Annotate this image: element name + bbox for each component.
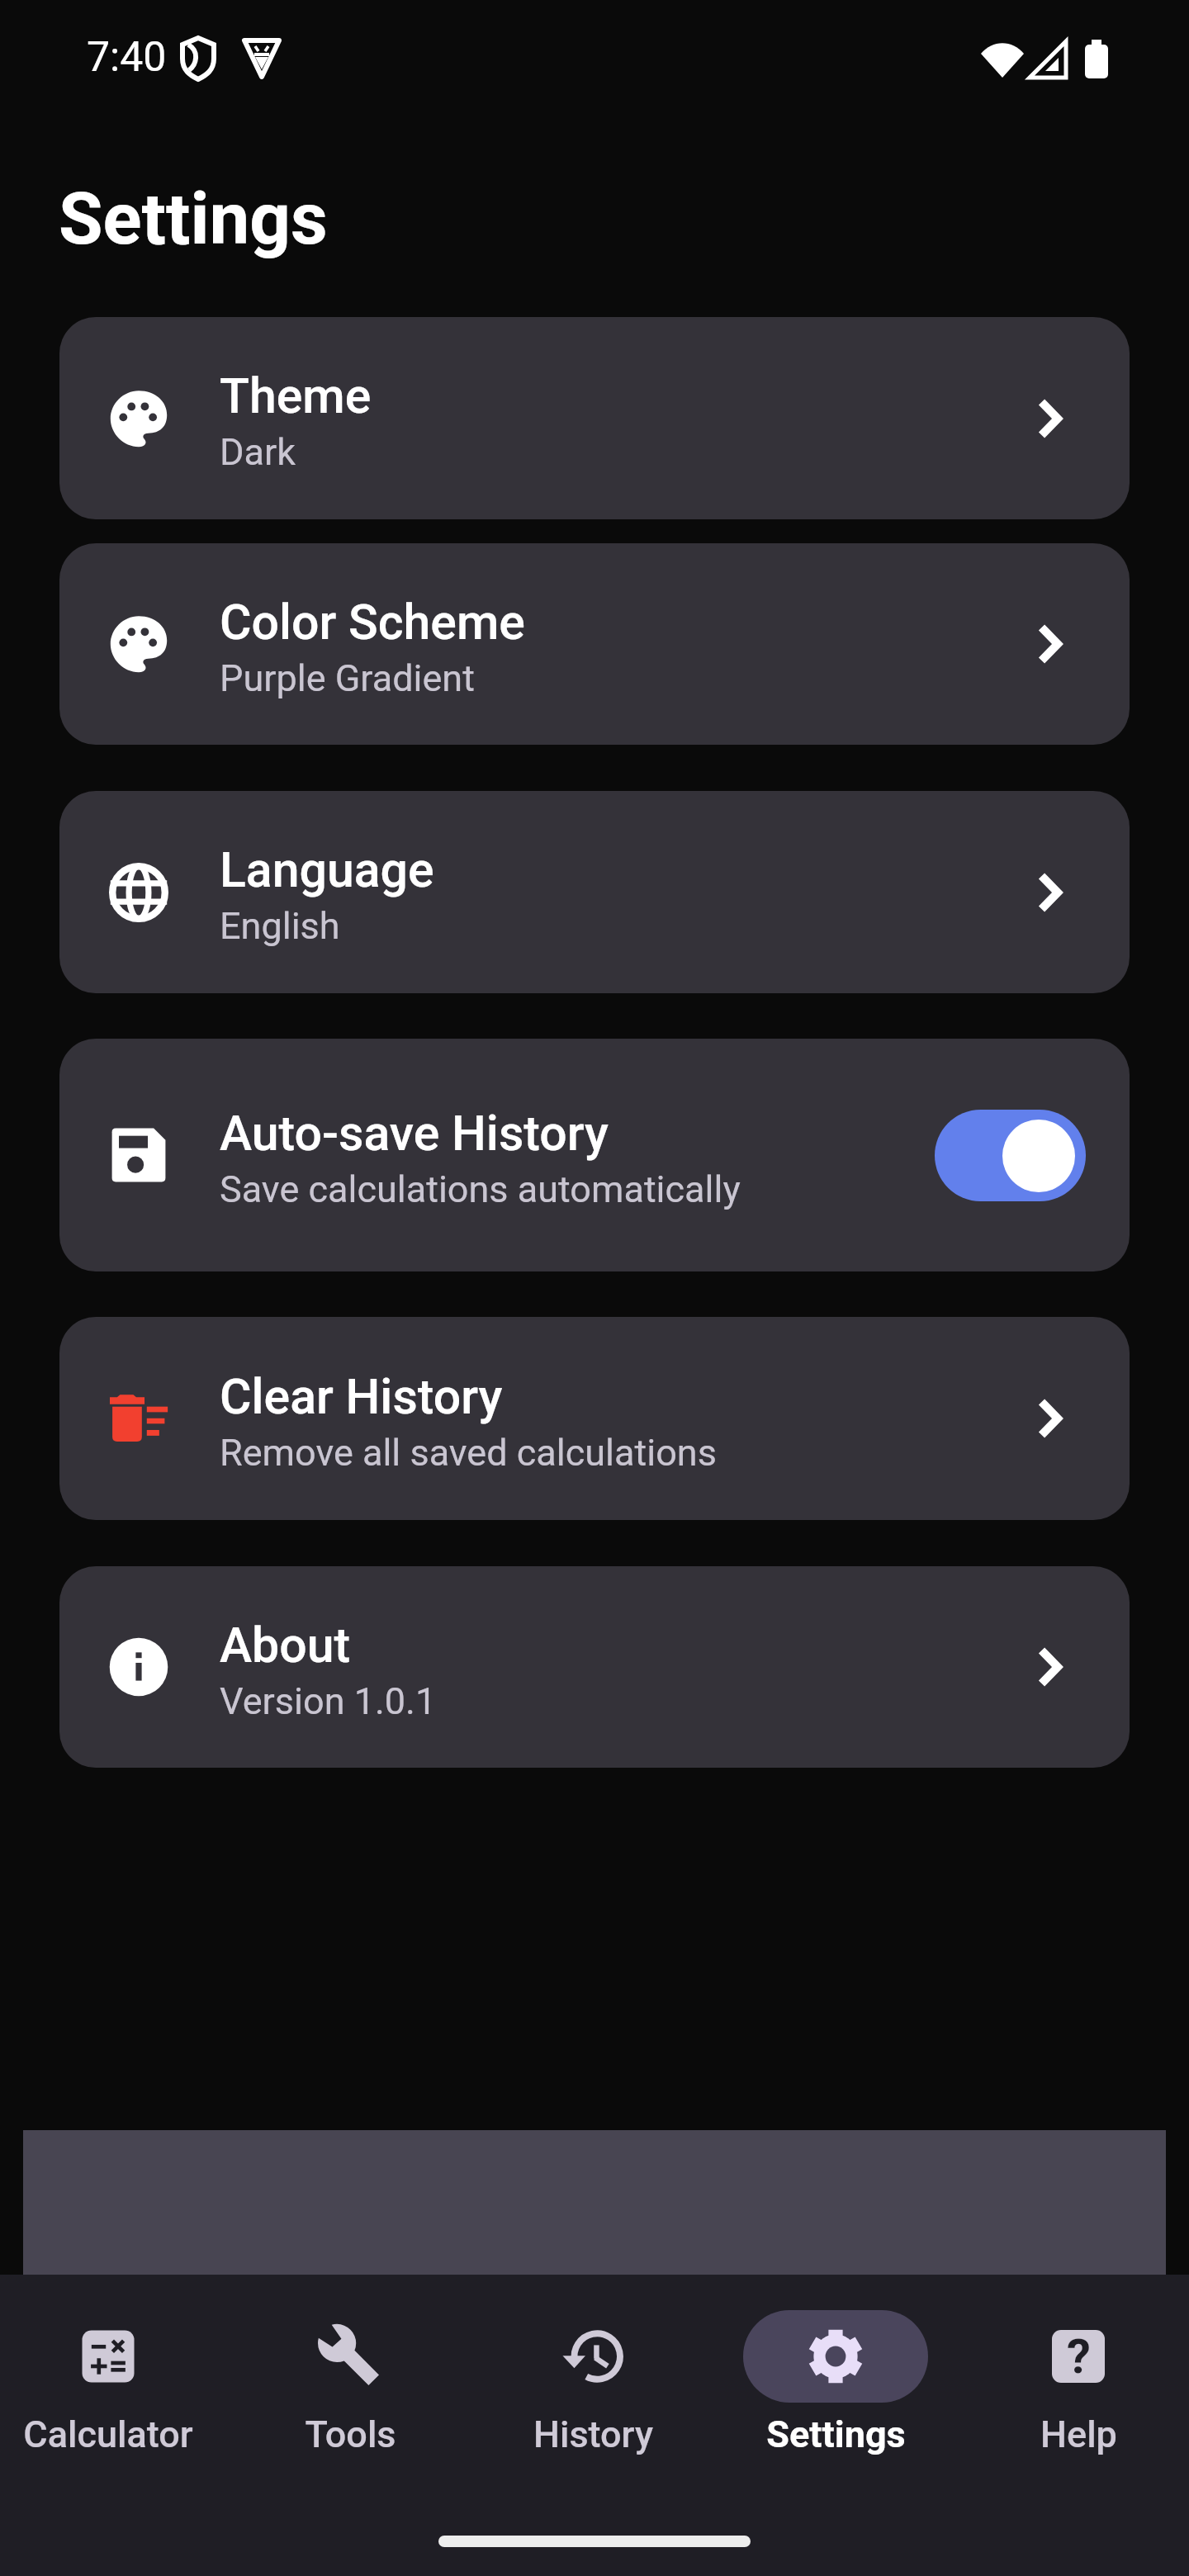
button[interactable]: Calculator [0,2275,229,2456]
staticText: Auto-save History [220,1105,609,1162]
button[interactable]: History [472,2275,713,2456]
staticText: ? [1067,2330,1091,2381]
staticText: Theme [220,367,372,424]
button[interactable]: ? [958,2275,1189,2456]
button[interactable]: Theme [59,317,1130,519]
button[interactable]: Auto-save history toggle [935,1110,1086,1201]
staticText: Save calculations automatically [220,1167,741,1211]
staticText: Language [220,841,434,898]
button[interactable]: Tools [230,2275,471,2456]
button[interactable]: Language [59,791,1130,993]
button[interactable]: Auto-save History [59,1039,1130,1271]
staticText: Calculator [23,2413,193,2456]
staticText: About [220,1617,351,1674]
button[interactable]: Settings [715,2275,956,2456]
button[interactable]: Color Scheme [59,543,1130,745]
staticText: Color Scheme [220,594,525,651]
staticText: Help [1040,2413,1117,2456]
staticText: English [220,904,340,948]
staticText: Settings [766,2413,906,2456]
staticText: Clear History [220,1368,503,1425]
button[interactable]: Clear History [59,1317,1130,1520]
staticText: Remove all saved calculations [220,1431,717,1475]
staticText: Dark [220,430,296,474]
button[interactable]: About [59,1566,1130,1768]
staticText: Version 1.0.1 [220,1679,437,1723]
staticText: 7:40 [87,33,167,82]
staticText: Tools [305,2413,396,2456]
staticText: History [533,2413,653,2456]
staticText: Purple Gradient [220,656,475,700]
staticText: Settings [59,177,328,261]
